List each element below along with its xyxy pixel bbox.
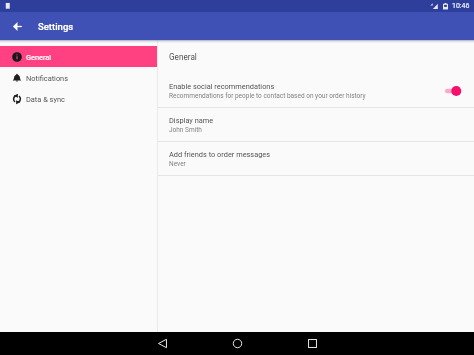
button[interactable]: Data & sync	[0, 88, 157, 109]
staticText: Add friends to order messages	[169, 150, 271, 159]
button[interactable]: Home	[225, 332, 249, 355]
staticText: Recommendations for people to contact ba…	[169, 92, 366, 100]
staticText: Enable social recommendations	[169, 82, 275, 91]
button[interactable]: Display name	[158, 108, 474, 141]
button[interactable]: Enable social recommendations	[158, 40, 474, 107]
button[interactable]: Recents	[300, 332, 324, 355]
button[interactable]: Add friends to order messages	[158, 142, 474, 175]
button[interactable]: Notifications	[0, 67, 157, 88]
button[interactable]: Back	[13, 12, 22, 40]
staticText: John Smith	[169, 126, 202, 134]
staticText: Never	[169, 160, 186, 168]
staticText: General	[26, 53, 52, 62]
staticText: Settings	[38, 21, 74, 32]
staticText: Display name	[169, 116, 214, 125]
staticText: 10:46	[452, 2, 470, 10]
button[interactable]: General	[0, 46, 157, 67]
staticText: Notifications	[26, 74, 69, 83]
staticText: Data & sync	[26, 95, 65, 104]
staticText: General	[169, 52, 197, 62]
button[interactable]: Back	[150, 332, 174, 355]
